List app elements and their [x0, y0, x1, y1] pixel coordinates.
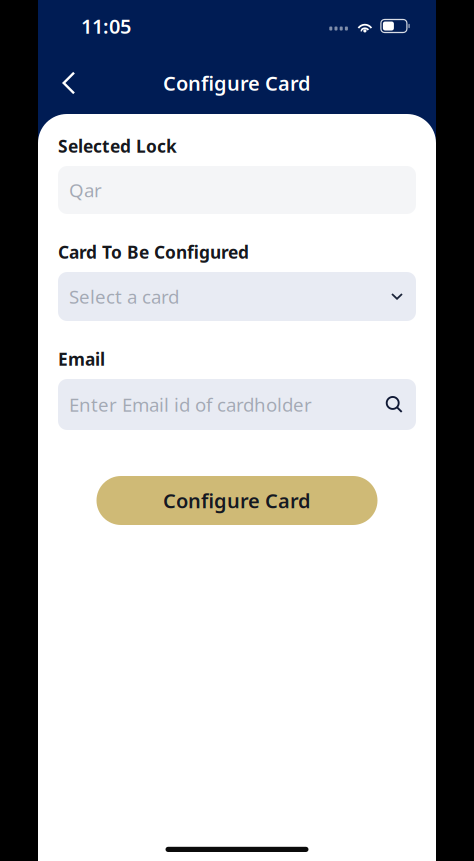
staticText: Configure Card — [163, 70, 311, 96]
button[interactable]: Back — [47, 61, 91, 105]
button[interactable]: Select a card — [58, 272, 416, 321]
button[interactable]: Enter Email id of cardholder — [58, 379, 416, 430]
staticText: Email — [58, 347, 105, 370]
staticText: Select a card — [69, 284, 179, 309]
staticText: Configure Card — [163, 487, 311, 514]
staticText: Qar — [69, 178, 102, 202]
staticText: Selected Lock — [58, 134, 177, 157]
button[interactable]: Configure Card — [96, 476, 377, 525]
staticText: Enter Email id of cardholder — [69, 392, 312, 417]
staticText: Card To Be Configured — [58, 240, 249, 263]
button[interactable]: Qar — [58, 166, 416, 214]
staticText: 11:05 — [81, 13, 131, 39]
